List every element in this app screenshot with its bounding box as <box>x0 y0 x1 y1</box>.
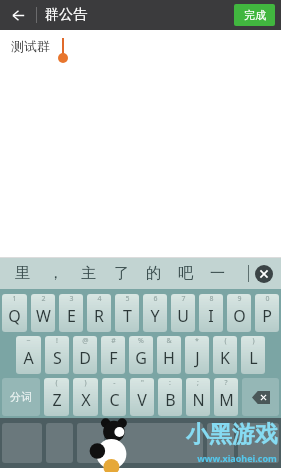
button[interactable]: ! <box>45 336 69 374</box>
staticText: 吧 <box>178 264 193 283</box>
button[interactable]: 0 <box>255 294 279 332</box>
button[interactable]: ~ <box>16 336 41 374</box>
staticText: ( <box>224 336 227 346</box>
staticText: 完成 <box>244 8 266 22</box>
staticText: D <box>79 347 91 369</box>
button[interactable]: 完成 <box>234 4 275 26</box>
staticText: V <box>137 389 147 411</box>
button[interactable]: ， <box>39 258 72 289</box>
button[interactable]: 的 <box>137 258 169 289</box>
staticText: F <box>109 347 118 369</box>
button[interactable]: ? <box>214 378 238 416</box>
staticText: W <box>36 305 51 327</box>
button[interactable]: Back <box>5 2 31 28</box>
staticText: J <box>195 347 200 369</box>
staticText: * <box>195 336 199 346</box>
staticText: Y <box>150 305 160 327</box>
button[interactable]: # <box>101 336 125 374</box>
staticText: 分词 <box>10 390 32 404</box>
staticText: 群公告 <box>45 6 87 24</box>
staticText: # <box>111 336 116 346</box>
staticText: L <box>249 347 258 369</box>
button[interactable]: ) <box>73 378 98 416</box>
staticText: 一 <box>210 264 225 283</box>
button[interactable]: @ <box>73 336 97 374</box>
staticText: 6 <box>153 294 158 304</box>
staticText: ( <box>55 378 58 388</box>
button[interactable]: Keyboard key <box>77 423 104 463</box>
button[interactable]: ; <box>186 378 210 416</box>
button[interactable]: 3 <box>59 294 83 332</box>
button[interactable]: ( <box>44 378 69 416</box>
staticText: G <box>135 347 147 369</box>
button[interactable]: Keyboard key <box>238 423 279 463</box>
staticText: X <box>81 389 91 411</box>
staticText: ? <box>224 378 228 388</box>
staticText: 了 <box>114 264 129 283</box>
button[interactable]: 里 <box>6 258 39 289</box>
button[interactable]: ( <box>213 336 237 374</box>
button[interactable]: 8 <box>199 294 223 332</box>
button[interactable]: 9 <box>227 294 251 332</box>
staticText: 小黑游戏 <box>186 420 278 449</box>
button[interactable]: Clear input <box>255 265 273 283</box>
staticText: N <box>192 389 205 411</box>
staticText: 7 <box>181 294 186 304</box>
staticText: 5 <box>125 294 130 304</box>
staticText: : <box>169 378 171 388</box>
button[interactable]: 6 <box>143 294 167 332</box>
button[interactable]: 5 <box>115 294 139 332</box>
button[interactable]: & <box>157 336 181 374</box>
staticText: B <box>165 389 176 411</box>
button[interactable]: 2 <box>31 294 55 332</box>
staticText: S <box>53 347 62 369</box>
staticText: T <box>123 305 132 327</box>
staticText: 里 <box>15 264 30 283</box>
staticText: C <box>109 389 120 411</box>
staticText: ! <box>56 336 58 346</box>
staticText: I <box>208 305 214 327</box>
button[interactable]: 一 <box>201 258 233 289</box>
staticText: K <box>220 347 230 369</box>
button[interactable]: ) <box>241 336 265 374</box>
staticText: 9 <box>237 294 242 304</box>
staticText: R <box>94 305 104 327</box>
button[interactable]: - <box>102 378 126 416</box>
staticText: M <box>219 389 234 411</box>
button[interactable]: 1 <box>2 294 27 332</box>
button[interactable]: Keyboard key <box>207 423 234 463</box>
staticText: P <box>262 305 272 327</box>
staticText: www.xiaohei.com <box>197 452 277 464</box>
staticText: ~ <box>26 336 31 346</box>
staticText: 0 <box>265 294 270 304</box>
button[interactable]: % <box>129 336 153 374</box>
staticText: 3 <box>69 294 74 304</box>
staticText: 测试群 <box>11 38 50 54</box>
staticText: ， <box>48 264 63 283</box>
staticText: ) <box>252 336 255 346</box>
staticText: ) <box>84 378 87 388</box>
staticText: 4 <box>97 294 102 304</box>
staticText: - <box>113 378 116 388</box>
staticText: H <box>163 347 175 369</box>
button[interactable]: * <box>185 336 209 374</box>
button[interactable]: : <box>158 378 182 416</box>
button[interactable]: Keyboard key <box>108 423 203 463</box>
button[interactable]: 7 <box>171 294 195 332</box>
staticText: Z <box>52 389 62 411</box>
button[interactable]: 吧 <box>169 258 201 289</box>
button[interactable]: 主 <box>72 258 105 289</box>
staticText: 1 <box>12 294 17 304</box>
staticText: U <box>177 305 189 327</box>
staticText: 2 <box>41 294 46 304</box>
button[interactable]: 4 <box>87 294 111 332</box>
button[interactable]: Backspace <box>242 378 279 416</box>
button[interactable]: 了 <box>105 258 137 289</box>
staticText: @ <box>82 336 89 346</box>
staticText: & <box>166 336 172 346</box>
button[interactable]: 分词 <box>2 378 40 416</box>
button[interactable]: " <box>130 378 154 416</box>
staticText: E <box>67 305 76 327</box>
